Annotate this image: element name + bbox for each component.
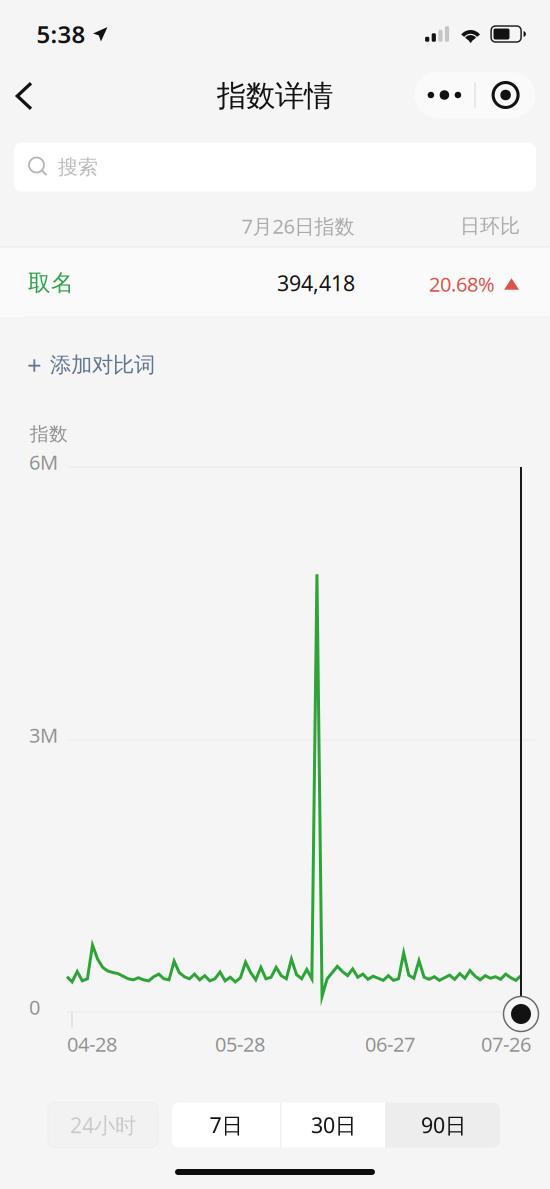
button[interactable]: + [0, 336, 179, 394]
button[interactable]: Close [476, 72, 536, 118]
button[interactable]: 90日 [386, 1102, 500, 1147]
staticText: 06-27 [365, 1031, 415, 1057]
button[interactable]: 搜索 [14, 142, 536, 191]
button[interactable]: 7日 [171, 1102, 280, 1147]
button[interactable]: 24小时 [48, 1102, 158, 1147]
staticText: 05-28 [215, 1031, 265, 1057]
staticText: 搜索 [58, 155, 98, 179]
button[interactable]: More [414, 72, 474, 118]
staticText: 394,418 [277, 269, 355, 297]
staticText: 0 [29, 994, 40, 1020]
staticText: 指数 [30, 422, 68, 445]
staticText: 添加对比词 [50, 352, 155, 378]
staticText: 04-28 [67, 1031, 117, 1057]
staticText: 7日 [209, 1111, 242, 1139]
staticText: + [27, 348, 41, 382]
staticText: 07-26 [481, 1031, 531, 1057]
button[interactable]: Back [1, 70, 47, 122]
staticText: 5:38 [36, 18, 85, 50]
staticText: 30日 [311, 1111, 356, 1139]
staticText: 指数详情 [217, 78, 333, 114]
staticText: 取名 [28, 269, 74, 297]
staticText: 90日 [421, 1111, 466, 1139]
staticText: 日环比 [460, 214, 520, 238]
staticText: 7月26日指数 [241, 213, 354, 239]
staticText: 20.68% [429, 271, 495, 297]
staticText: 6M [29, 449, 58, 475]
button[interactable]: 30日 [281, 1102, 385, 1147]
staticText: 24小时 [70, 1111, 136, 1139]
staticText: 3M [29, 722, 58, 748]
